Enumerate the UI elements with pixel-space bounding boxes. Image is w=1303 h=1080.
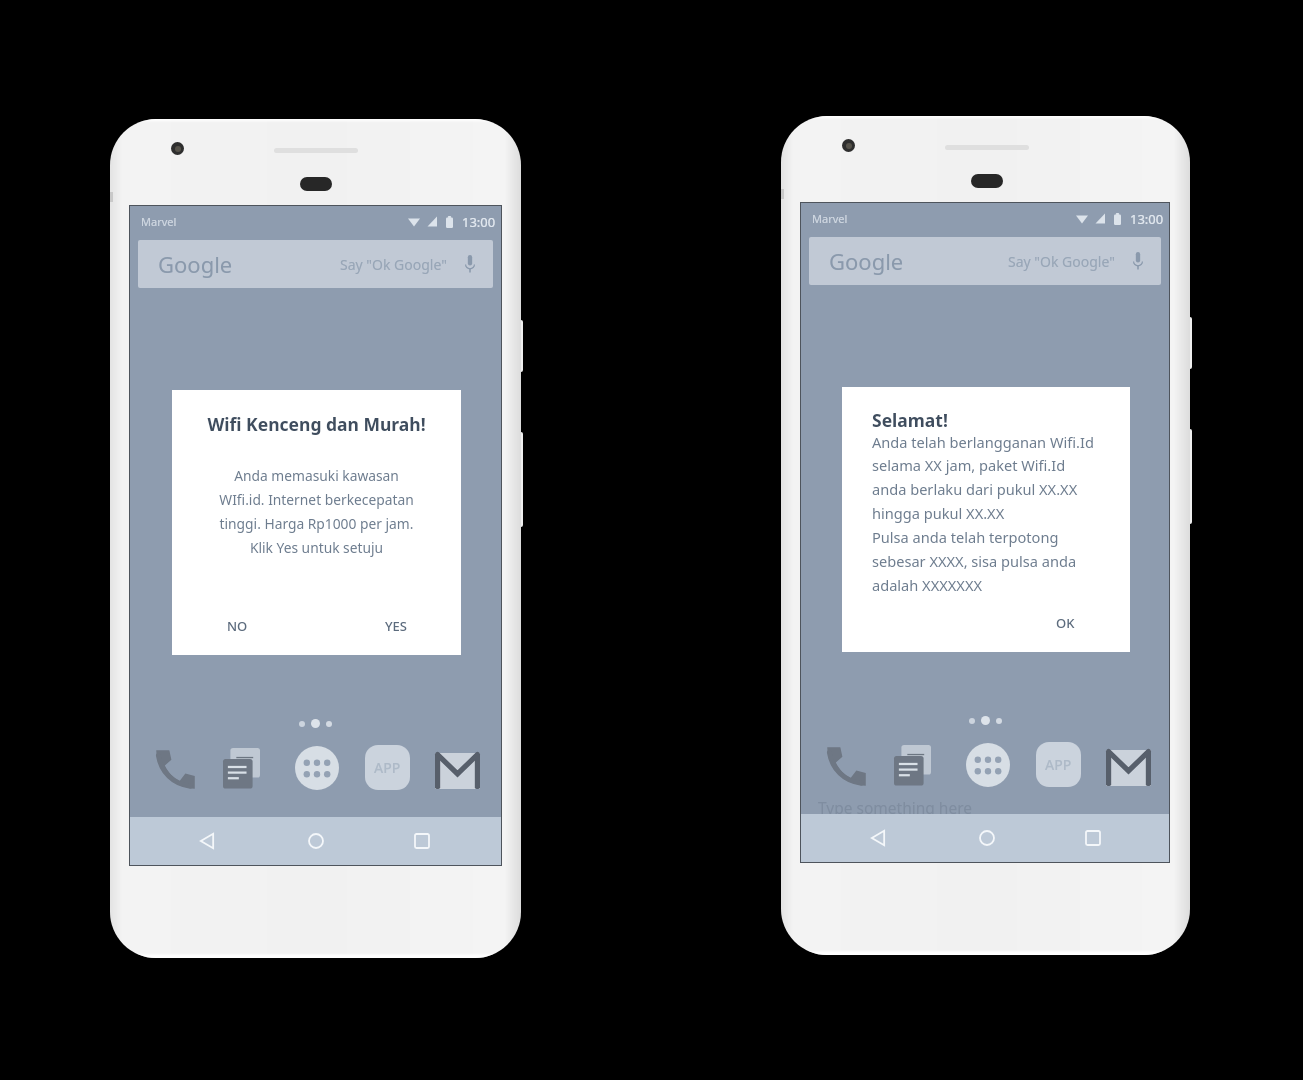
staticText: Say "Ok Google" (340, 255, 447, 274)
staticText: Marvel (141, 214, 177, 229)
button[interactable]: Phone (826, 746, 867, 787)
button[interactable]: Back (183, 817, 231, 865)
staticText: OK (1056, 614, 1075, 632)
button[interactable]: Google (809, 237, 1161, 285)
button[interactable]: Recents (1069, 814, 1117, 862)
staticText: Marvel (812, 211, 848, 226)
staticText: Type something here (818, 797, 973, 818)
button[interactable]: Phone (155, 749, 196, 790)
staticText: Anda telah berlangganan Wifi.Id selama X… (872, 432, 1094, 596)
button[interactable]: All apps (966, 743, 1010, 787)
other: Voice search (463, 254, 477, 274)
staticText: 13:00 (1130, 210, 1164, 228)
button[interactable]: Gmail (1106, 750, 1151, 786)
other: Voice search (1131, 251, 1145, 271)
staticText: APP (1045, 755, 1072, 774)
button[interactable]: Back (854, 814, 902, 862)
staticText: 13:00 (462, 213, 496, 231)
button[interactable]: All apps (295, 746, 339, 790)
button[interactable]: Home (963, 814, 1011, 862)
staticText: APP (374, 758, 401, 777)
staticText: Say "Ok Google" (1008, 252, 1115, 271)
button[interactable]: APP (1036, 742, 1081, 787)
staticText: Wifi Kenceng dan Murah! (207, 412, 426, 436)
button[interactable]: Gmail (435, 753, 480, 789)
staticText: YES (385, 617, 407, 635)
button[interactable]: Messages (223, 748, 260, 790)
staticText: NO (227, 617, 248, 635)
button[interactable]: Google (138, 240, 493, 288)
staticText: Selamat! (872, 408, 948, 432)
button[interactable]: Recents (398, 817, 446, 865)
staticText: Anda memasuki kawasan WIfi.id. Internet … (219, 466, 414, 557)
staticText: Google (829, 246, 904, 276)
button[interactable]: Messages (894, 745, 931, 787)
button[interactable]: APP (365, 745, 410, 790)
button[interactable]: Home (292, 817, 340, 865)
button[interactable]: OK (1050, 609, 1081, 637)
staticText: Google (158, 249, 233, 279)
button[interactable]: YES (377, 612, 415, 640)
button[interactable]: NO (219, 612, 256, 640)
